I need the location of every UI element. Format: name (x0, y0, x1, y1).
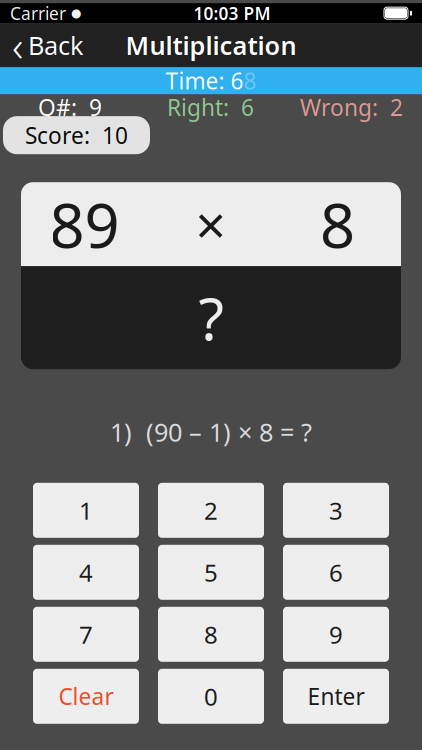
staticText: 3 (329, 494, 343, 526)
staticText: 1 (79, 494, 93, 526)
button[interactable]: Clear (33, 669, 139, 724)
staticText: Carrier (10, 2, 66, 25)
staticText: 6 (329, 556, 343, 588)
staticText: Time: 6 (165, 66, 243, 96)
button[interactable]: 3 (283, 483, 389, 538)
button[interactable]: Enter (283, 669, 389, 724)
staticText: Q#: 9 (38, 92, 102, 122)
staticText: ? (198, 279, 223, 357)
staticText: Right: 6 (167, 92, 254, 122)
button[interactable]: 7 (33, 607, 139, 662)
staticText: Clear (58, 681, 113, 711)
button[interactable]: ‹ (0, 23, 96, 67)
staticText: 10:03 PM (193, 2, 270, 25)
staticText: × (195, 189, 226, 260)
button[interactable]: 4 (33, 545, 139, 600)
staticText: 5 (204, 556, 218, 588)
button[interactable]: 1 (33, 483, 139, 538)
staticText: 4 (79, 556, 93, 588)
staticText: 8 (243, 66, 256, 96)
staticText: 0 (204, 680, 218, 712)
staticText: Score: 10 (25, 120, 128, 150)
staticText: Enter (307, 681, 364, 711)
button[interactable]: 9 (283, 607, 389, 662)
button[interactable]: 0 (158, 669, 264, 724)
staticText: Back (28, 28, 84, 62)
button[interactable]: 8 (158, 607, 264, 662)
staticText: 1) (90 – 1) × 8 = ? (110, 415, 312, 449)
staticText: 8 (204, 618, 218, 650)
staticText: 7 (79, 618, 93, 650)
staticText: Multiplication (125, 28, 296, 62)
staticText: Wrong: 2 (300, 92, 403, 122)
button[interactable]: 6 (283, 545, 389, 600)
staticText: ‹ (12, 17, 23, 73)
button[interactable]: 2 (158, 483, 264, 538)
staticText: 89 (49, 183, 119, 265)
staticText: 8 (320, 183, 355, 265)
button[interactable]: 5 (158, 545, 264, 600)
staticText: ● (71, 6, 81, 20)
staticText: 9 (329, 618, 343, 650)
staticText: 2 (204, 494, 218, 526)
